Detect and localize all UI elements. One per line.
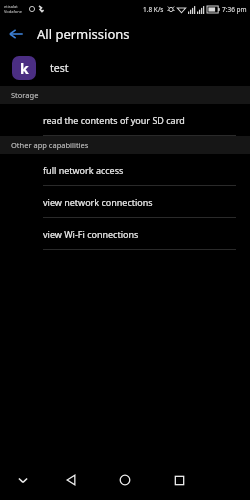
staticText: read the contents of your SD card <box>43 114 185 126</box>
staticText: Storage <box>11 90 39 100</box>
staticText: All permissions <box>37 25 130 43</box>
staticText: view Wi-Fi connections <box>43 228 139 240</box>
staticText: 7:36 pm <box>222 5 247 14</box>
button[interactable]: read the contents of your SD card <box>0 104 250 136</box>
staticText: Other app capabilities <box>11 140 89 150</box>
staticText: k <box>20 59 29 78</box>
button[interactable]: Back <box>58 467 84 493</box>
button[interactable]: view network connections <box>0 186 250 218</box>
button[interactable]: view Wi-Fi connections <box>0 218 250 250</box>
button[interactable]: Hide navigation bar <box>11 468 35 492</box>
staticText: full network access <box>43 164 124 176</box>
button[interactable]: full network access <box>0 154 250 186</box>
staticText: Vodafone <box>4 9 22 14</box>
staticText: view network connections <box>43 196 153 208</box>
button[interactable]: k <box>0 50 250 86</box>
button[interactable]: Recent apps <box>166 467 192 493</box>
button[interactable]: Back <box>0 18 32 50</box>
staticText: etisalat <box>4 4 18 9</box>
staticText: test <box>50 61 69 75</box>
staticText: 1.8 K/s <box>143 5 164 14</box>
button[interactable]: Home <box>112 467 138 493</box>
